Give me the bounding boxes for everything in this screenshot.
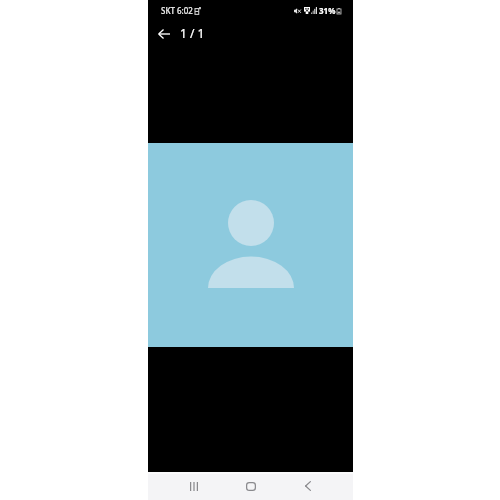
button[interactable]: Recent apps (175, 472, 213, 500)
staticText: 31% (319, 5, 336, 16)
staticText: 1 / 1 (180, 25, 205, 41)
button[interactable]: Back (289, 472, 327, 500)
button[interactable]: Photo 1 of 1 (148, 143, 353, 347)
button[interactable]: Back (154, 24, 173, 43)
staticText: SKT 6:02 (161, 5, 193, 16)
button[interactable]: Home (232, 472, 270, 500)
